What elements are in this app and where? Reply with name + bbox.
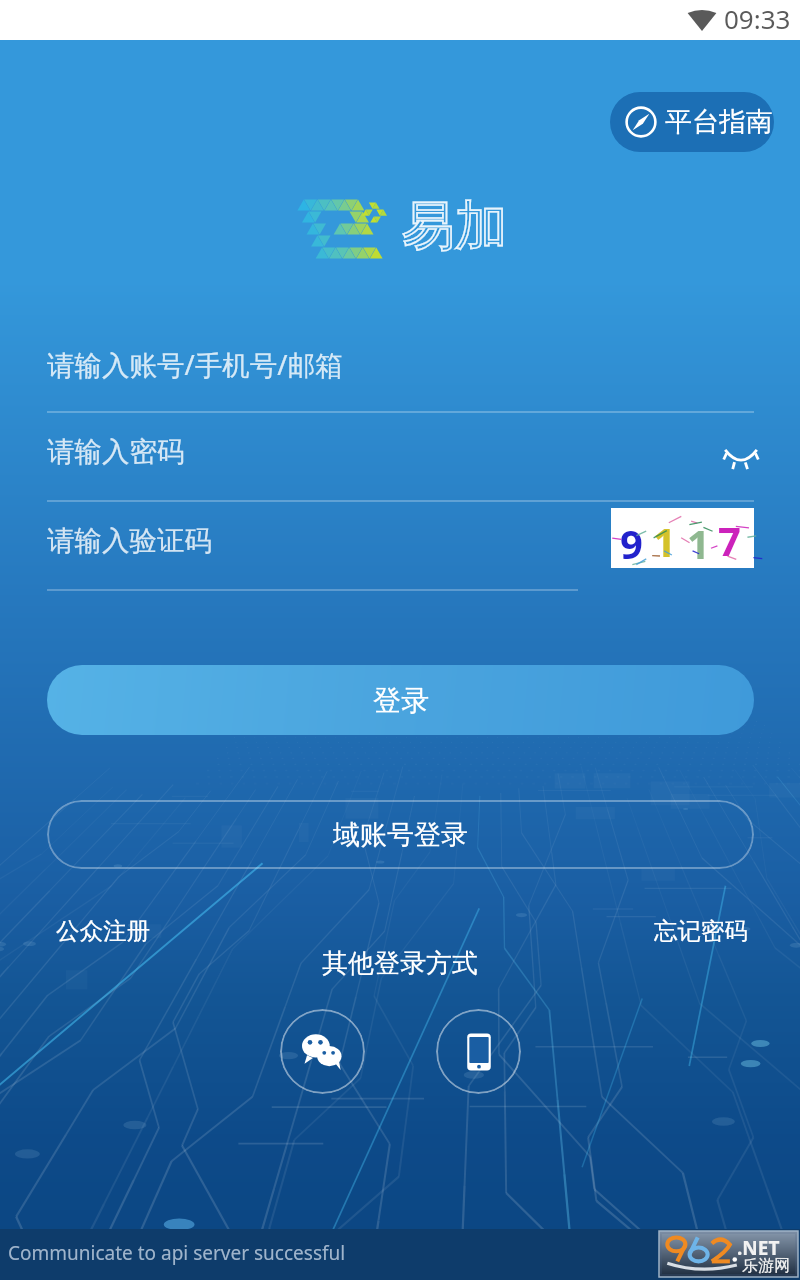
staticText: .NET: [737, 1235, 780, 1261]
staticText: 请输入密码: [47, 435, 185, 470]
button[interactable]: 请输入密码: [0, 413, 800, 502]
staticText: 乐游网: [742, 1256, 790, 1276]
staticText: 域账号登录: [333, 818, 468, 852]
staticText: 平台指南: [665, 105, 773, 139]
button[interactable]: 平台指南: [610, 92, 774, 152]
staticText: 易加: [402, 193, 508, 260]
button[interactable]: Refresh captcha: [611, 508, 754, 568]
other: Wi-Fi: [687, 9, 717, 31]
staticText: 请输入账号/手机号/邮箱: [47, 346, 343, 384]
staticText: 其他登录方式: [322, 947, 478, 980]
button[interactable]: 请输入账号/手机号/邮箱: [0, 324, 800, 413]
button[interactable]: 其他登录方式: [320, 945, 480, 982]
staticText: 9: [620, 516, 643, 570]
button[interactable]: 公众注册: [54, 914, 152, 948]
button[interactable]: Mobile login: [436, 1009, 521, 1094]
staticText: 7: [718, 513, 741, 567]
button[interactable]: WeChat login: [280, 1009, 365, 1094]
staticText: 请输入验证码: [47, 524, 212, 559]
staticText: 1: [687, 516, 710, 570]
staticText: 忘记密码: [654, 916, 748, 946]
other: Toggle password visibility: [723, 447, 759, 471]
button[interactable]: 忘记密码: [652, 914, 750, 948]
staticText: 登录: [373, 683, 429, 718]
staticText: 1: [653, 514, 676, 568]
staticText: 09:33: [724, 1, 791, 36]
staticText: 公众注册: [56, 916, 150, 946]
button[interactable]: 请输入验证码: [0, 502, 800, 591]
button[interactable]: 域账号登录: [47, 800, 754, 869]
staticText: Communicate to api server successful: [8, 1240, 346, 1266]
button[interactable]: 登录: [47, 665, 754, 735]
